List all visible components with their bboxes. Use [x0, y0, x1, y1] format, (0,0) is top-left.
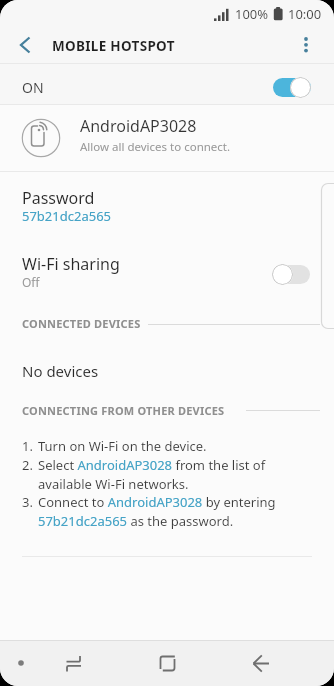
staticText: 100%: [235, 5, 269, 23]
button[interactable]: [151, 647, 183, 679]
button[interactable]: AndroidAP3028: [0, 105, 334, 171]
staticText: 3.: [22, 493, 38, 511]
button[interactable]: Wi-Fi sharing: [0, 244, 334, 300]
button[interactable]: [292, 32, 322, 60]
staticText: Allow all devices to connect.: [80, 139, 231, 155]
staticText: 1.: [22, 437, 38, 455]
staticText: CONNECTING FROM OTHER DEVICES: [22, 403, 225, 418]
staticText: 10:00: [288, 5, 322, 23]
staticText: 57b21dc2a565: [22, 207, 112, 225]
staticText: Select AndroidAP3028 from the list of av…: [38, 456, 266, 492]
staticText: Off: [22, 274, 40, 290]
staticText: CONNECTED DEVICES: [22, 316, 141, 331]
button[interactable]: [272, 264, 310, 285]
staticText: Connect to AndroidAP3028 by entering 57b…: [38, 493, 276, 529]
staticText: 2.: [22, 456, 38, 474]
button[interactable]: Password: [0, 172, 334, 234]
staticText: MOBILE HOTSPOT: [52, 37, 175, 55]
staticText: Wi-Fi sharing: [22, 253, 120, 275]
button[interactable]: [57, 647, 89, 679]
button[interactable]: [273, 77, 311, 98]
button[interactable]: [245, 647, 277, 679]
staticText: AndroidAP3028: [80, 115, 197, 137]
button[interactable]: [8, 32, 42, 60]
staticText: ON: [22, 78, 44, 97]
button[interactable]: ON: [0, 64, 334, 105]
staticText: Password: [22, 187, 95, 209]
staticText: Turn on Wi-Fi on the device.: [38, 437, 207, 455]
staticText: No devices: [22, 361, 99, 381]
